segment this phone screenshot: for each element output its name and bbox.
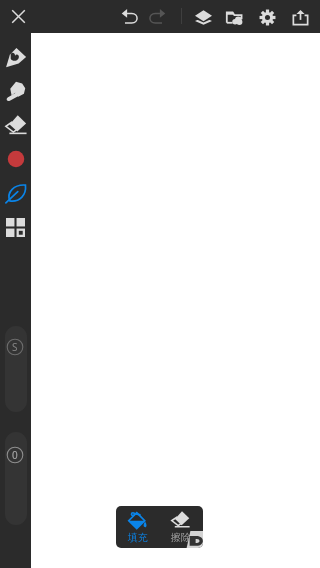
button[interactable]: Settings	[253, 3, 281, 31]
button[interactable]: Brush	[0, 41, 31, 73]
button[interactable]: Tools	[0, 211, 31, 243]
button[interactable]: Gallery	[220, 3, 248, 31]
staticText: 擦除	[171, 531, 191, 544]
button[interactable]: Brush size	[5, 326, 27, 412]
button[interactable]: Opacity	[5, 432, 27, 525]
button[interactable]: 擦除	[159, 506, 202, 548]
button[interactable]: Redo	[143, 3, 171, 31]
button[interactable]: Close	[4, 2, 32, 31]
button[interactable]: Layers	[189, 3, 217, 31]
staticText: 0	[12, 448, 18, 462]
button[interactable]: Leaf	[0, 177, 31, 209]
button[interactable]: Share	[286, 3, 314, 31]
button[interactable]: Eraser	[0, 109, 31, 141]
button[interactable]: 填充	[116, 506, 159, 548]
staticText: S	[12, 340, 18, 354]
button[interactable]: Color	[0, 143, 31, 175]
staticText: 填充	[128, 531, 148, 544]
button[interactable]: Smudge	[0, 75, 31, 107]
button[interactable]: Undo	[116, 3, 144, 31]
